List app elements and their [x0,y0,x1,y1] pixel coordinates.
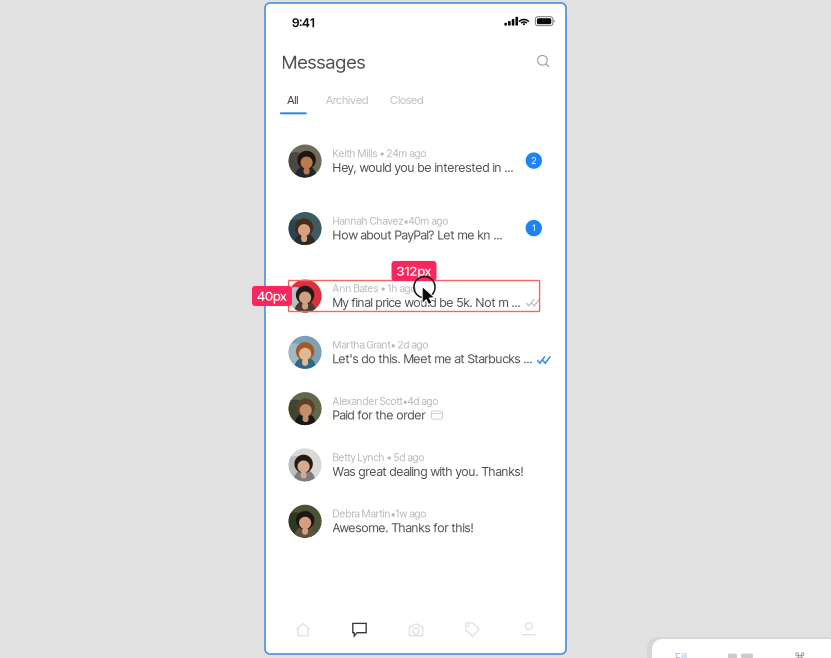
staticText: Martha Grant• 2d ago [333,338,429,351]
staticText: Alexander Scott•4d ago [333,395,439,407]
staticText: ⌘ [794,650,805,658]
staticText: Betty Lynch • 5d ago [333,451,425,464]
staticText: Fill [675,650,687,658]
staticText: Messages [281,51,365,73]
button[interactable]: Search [531,49,557,75]
staticText: Awesome. Thanks for this! [333,520,474,535]
staticText: Closed [390,93,423,107]
button[interactable]: Martha Grant• 2d ago [289,337,540,368]
button[interactable]: Home [281,610,325,650]
button[interactable]: Ann Bates • 1h ago [289,280,540,311]
staticText: Hannah Chavez•40m ago [333,215,449,227]
staticText: 1 [532,222,535,234]
staticText: Keith Mills • 24m ago [333,147,427,160]
button[interactable]: Closed [385,89,427,111]
staticText: 9:41 [292,15,315,30]
button[interactable]: Camera [394,610,438,650]
button[interactable]: Debra Martin•1w ago [289,506,540,537]
staticText: Hey, would you be interested in ... [333,160,514,175]
button[interactable]: Archived [322,89,372,111]
button[interactable]: Messages [337,610,381,650]
button[interactable]: Profile [507,610,551,650]
staticText: Paid for the order [333,408,426,423]
button[interactable]: Hannah Chavez•40m ago [289,213,540,244]
staticText: All [287,93,298,107]
staticText: 2 [531,155,536,166]
button[interactable]: Tags [450,610,494,650]
staticText: Ann Bates • 1h ago [333,282,417,295]
staticText: Archived [326,93,368,107]
staticText: Was great dealing with you. Thanks! [333,464,524,479]
staticText: Let's do this. Meet me at Starbucks ... [333,351,533,366]
button[interactable]: Alexander Scott•4d ago [289,393,540,424]
staticText: 312px [396,263,431,279]
staticText: How about PayPal? Let me kn ... [333,227,503,242]
button[interactable]: Betty Lynch • 5d ago [289,449,540,480]
staticText: 40px [257,288,287,304]
staticText: Debra Martin•1w ago [333,507,427,520]
staticText: My final price would be 5k. Not m ... [333,295,521,310]
button[interactable]: All [278,89,308,111]
button[interactable]: Keith Mills • 24m ago [289,145,540,176]
